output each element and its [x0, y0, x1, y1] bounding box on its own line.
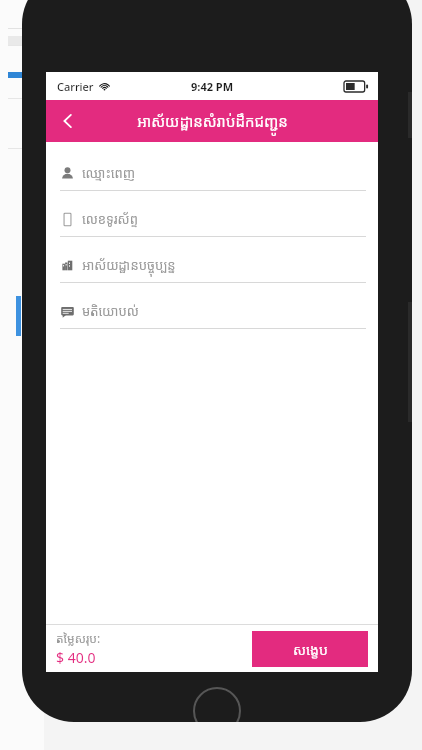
staticText: $ 40.0: [56, 648, 96, 667]
staticText: មតិយោបល់: [82, 302, 139, 320]
button[interactable]: Back: [46, 100, 90, 142]
button[interactable]: លេខទូរស័ព្ទ: [46, 202, 378, 237]
staticText: Carrier: [57, 79, 94, 94]
staticText: តម្លៃសរុប:: [56, 630, 101, 646]
staticText: សង្ខេប: [293, 640, 328, 659]
staticText: លេខទូរស័ព្ទ: [82, 210, 138, 228]
staticText: 9:42 PM: [191, 79, 234, 94]
button[interactable]: អាស័យដ្ឋានបច្ចុប្បន្ន: [46, 248, 378, 283]
staticText: អាស័យដ្ឋានបច្ចុប្បន្ន: [82, 256, 176, 274]
staticText: អាស័យដ្ឋានសំរាប់ដឹកជញ្ជូន: [137, 111, 288, 131]
button[interactable]: សង្ខេប: [252, 631, 368, 667]
button[interactable]: ឈ្មោះពេញ: [46, 156, 378, 191]
staticText: ឈ្មោះពេញ: [82, 164, 136, 182]
button[interactable]: មតិយោបល់: [46, 294, 378, 329]
